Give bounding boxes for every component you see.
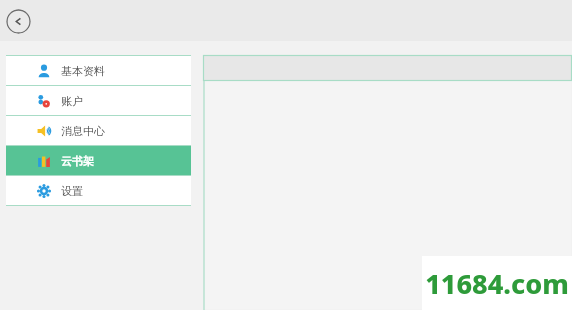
staticText: 消息中心 [61, 124, 105, 138]
button[interactable]: 设置 [6, 176, 191, 205]
button[interactable]: Back [6, 9, 31, 34]
button[interactable]: 消息中心 [6, 116, 191, 145]
button[interactable]: 云书架 [6, 146, 191, 175]
staticText: 云书架 [61, 154, 94, 168]
staticText: 11684.com [425, 265, 569, 302]
staticText: 账户 [61, 94, 83, 108]
button[interactable]: 账户 [6, 86, 191, 115]
staticText: 设置 [61, 184, 83, 198]
staticText: 基本资料 [61, 64, 105, 78]
button[interactable]: 基本资料 [6, 56, 191, 85]
